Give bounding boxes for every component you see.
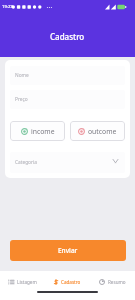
staticText: Cadastro	[50, 31, 85, 42]
staticText: Resumo	[108, 279, 126, 285]
staticText: income	[31, 127, 55, 136]
button[interactable]: income	[10, 121, 65, 141]
staticText: Categoria	[15, 159, 37, 166]
staticText: outcome	[88, 127, 117, 136]
staticText: Enviar	[58, 246, 78, 255]
button[interactable]: outcome	[70, 121, 125, 141]
button[interactable]: Listagem	[0, 273, 45, 290]
button[interactable]: Preço	[10, 90, 125, 109]
staticText: Preço	[15, 96, 28, 103]
button[interactable]: Enviar	[10, 240, 126, 261]
staticText: 19:27	[2, 4, 13, 10]
staticText: Listagem	[17, 279, 37, 285]
staticText: Nome	[15, 72, 29, 79]
button[interactable]: Cadastro	[45, 273, 90, 290]
button[interactable]: Categoria	[10, 152, 125, 173]
staticText: Cadastro	[61, 279, 81, 285]
button[interactable]: Nome	[10, 66, 125, 85]
button[interactable]: Resumo	[90, 273, 135, 290]
